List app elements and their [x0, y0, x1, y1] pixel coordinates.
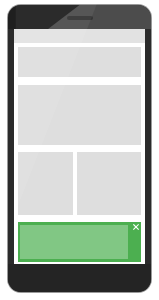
button[interactable]: Close ad — [18, 222, 141, 262]
button[interactable]: Close ad — [131, 222, 141, 232]
